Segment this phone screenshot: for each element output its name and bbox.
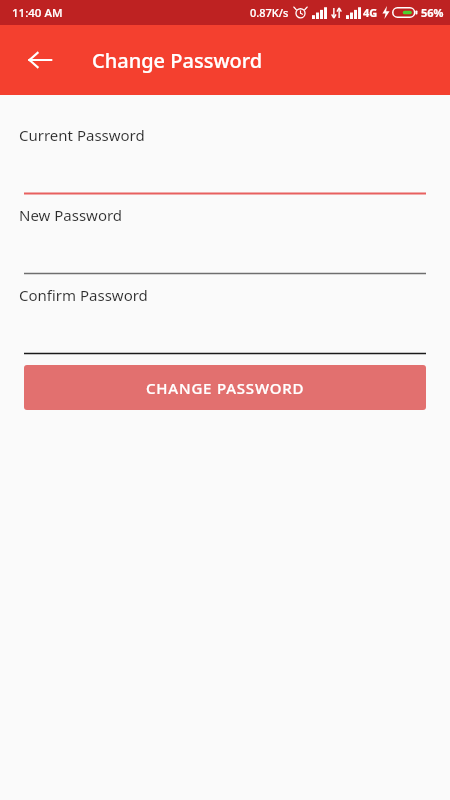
button[interactable]: CHANGE PASSWORD — [24, 365, 426, 410]
button[interactable]: Current Password — [0, 115, 450, 173]
staticText: 4G — [363, 5, 378, 20]
staticText: Confirm Password — [19, 285, 148, 305]
staticText: Current Password — [19, 125, 145, 145]
staticText: CHANGE PASSWORD — [146, 378, 305, 398]
staticText: 11:40 AM — [12, 5, 63, 21]
button[interactable]: New Password — [0, 195, 450, 253]
staticText: 0.87K/s — [250, 5, 289, 20]
staticText: New Password — [19, 205, 123, 225]
staticText: 56% — [421, 5, 444, 20]
button[interactable]: Confirm Password — [0, 275, 450, 333]
button[interactable]: Back — [16, 36, 64, 84]
staticText: Change Password — [92, 47, 263, 74]
